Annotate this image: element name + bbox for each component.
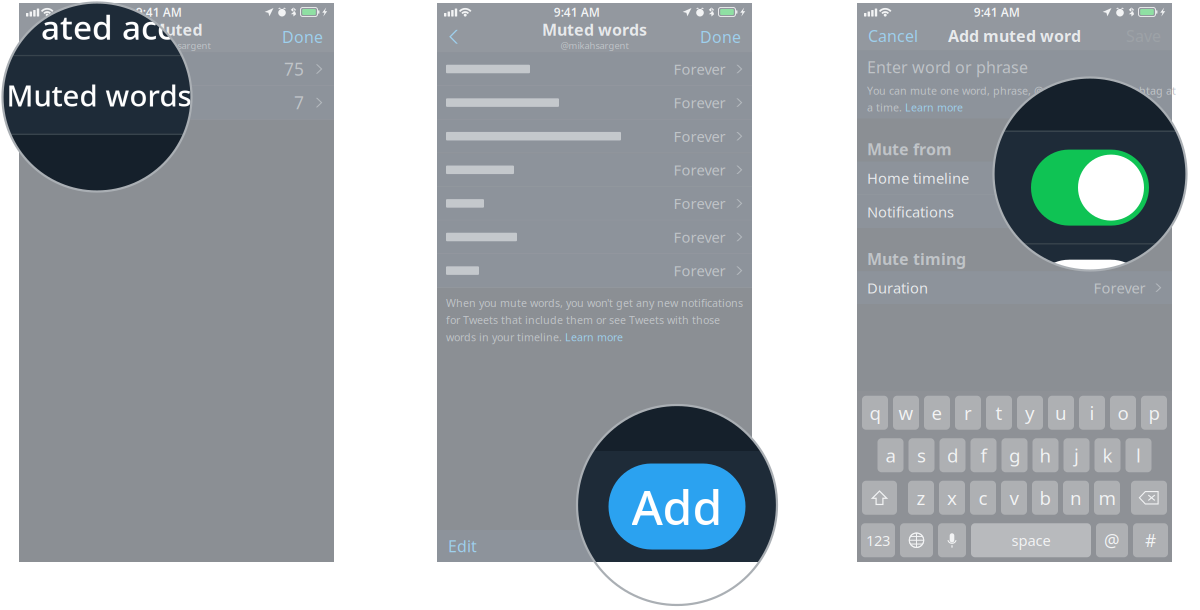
- staticText: Forever: [674, 59, 726, 79]
- staticText: 9:41 AM: [974, 4, 1020, 20]
- staticText: Duration: [867, 278, 928, 297]
- staticText: w: [898, 400, 913, 425]
- button[interactable]: n: [1063, 481, 1089, 515]
- button[interactable]: u: [1048, 396, 1074, 430]
- button[interactable]: 75: [19, 52, 334, 85]
- staticText: v: [1009, 485, 1018, 510]
- staticText: Home timeline: [867, 168, 969, 188]
- button[interactable]: Forever: [437, 254, 752, 287]
- button[interactable]: t: [986, 396, 1012, 430]
- button[interactable]: Forever: [437, 187, 752, 220]
- staticText: b: [1039, 485, 1050, 510]
- button[interactable]: Toggle Home timeline: [1128, 168, 1162, 188]
- staticText: d: [947, 443, 958, 468]
- button[interactable]: Forever: [437, 120, 752, 153]
- button[interactable]: Home timeline on: [1031, 150, 1149, 226]
- button[interactable]: Forever: [437, 52, 752, 85]
- staticText: Learn more: [905, 100, 963, 114]
- button[interactable]: o: [1110, 396, 1136, 430]
- staticText: a: [885, 443, 895, 468]
- staticText: @mikahsargent: [560, 39, 628, 52]
- button[interactable]: j: [1063, 438, 1089, 472]
- staticText: Cancel: [868, 25, 918, 46]
- button[interactable]: Dictate: [938, 523, 966, 557]
- button[interactable]: q: [862, 396, 888, 430]
- staticText: h: [1039, 443, 1051, 468]
- staticText: Forever: [674, 261, 726, 280]
- staticText: j: [1074, 443, 1079, 468]
- button[interactable]: c: [970, 481, 996, 515]
- button[interactable]: 7: [19, 86, 334, 119]
- button[interactable]: Add: [608, 463, 745, 549]
- staticText: You can mute one word, phrase, @username…: [867, 84, 1176, 98]
- staticText: c: [978, 485, 987, 510]
- staticText: Done: [700, 26, 741, 47]
- staticText: n: [1070, 485, 1082, 510]
- staticText: Muted words: [542, 19, 647, 40]
- button[interactable]: i: [1079, 396, 1105, 430]
- button[interactable]: d: [939, 438, 965, 472]
- staticText: Add: [711, 535, 741, 557]
- button[interactable]: w: [893, 396, 919, 430]
- button[interactable]: Forever: [437, 86, 752, 119]
- button[interactable]: y: [1017, 396, 1043, 430]
- staticText: 9:41 AM: [554, 4, 600, 20]
- button[interactable]: Switch keyboard: [900, 523, 933, 557]
- button[interactable]: m: [1094, 481, 1120, 515]
- button[interactable]: Shift: [862, 481, 897, 515]
- staticText: q: [869, 400, 880, 425]
- staticText: u: [1055, 400, 1067, 425]
- button[interactable]: Done: [689, 21, 752, 52]
- staticText: for Tweets that include them or see Twee…: [446, 313, 720, 327]
- staticText: space: [1011, 530, 1050, 550]
- button[interactable]: k: [1094, 438, 1120, 472]
- button[interactable]: Edit: [437, 530, 488, 562]
- staticText: r: [964, 400, 972, 425]
- staticText: Save: [1126, 25, 1161, 46]
- staticText: l: [1136, 443, 1141, 468]
- button[interactable]: Done: [271, 21, 334, 52]
- staticText: Muted: [150, 19, 202, 40]
- staticText: @mikahsargent: [142, 39, 210, 52]
- button[interactable]: space: [971, 523, 1091, 557]
- button[interactable]: #: [1133, 523, 1168, 557]
- button[interactable]: s: [908, 438, 934, 472]
- button[interactable]: g: [1001, 438, 1027, 472]
- staticText: a time.: [867, 100, 905, 114]
- staticText: Mute from: [867, 138, 952, 160]
- button[interactable]: p: [1141, 396, 1167, 430]
- staticText: 123: [866, 530, 890, 550]
- button[interactable]: l: [1125, 438, 1151, 472]
- staticText: 9:41 AM: [136, 4, 182, 20]
- button[interactable]: @: [1096, 523, 1128, 557]
- button[interactable]: 123: [861, 523, 895, 557]
- button[interactable]: v: [1001, 481, 1027, 515]
- staticText: Learn more: [565, 330, 623, 344]
- button[interactable]: Forever: [437, 153, 752, 186]
- button[interactable]: Toggle Notifications: [1128, 202, 1162, 222]
- staticText: i: [1089, 400, 1094, 425]
- button[interactable]: Back: [437, 21, 470, 52]
- staticText: Forever: [674, 126, 726, 146]
- button[interactable]: Duration: [857, 271, 1172, 304]
- button[interactable]: Delete: [1131, 481, 1167, 515]
- staticText: Notifications: [867, 202, 954, 221]
- button[interactable]: Forever: [437, 220, 752, 253]
- button[interactable]: x: [939, 481, 965, 515]
- staticText: f: [980, 443, 986, 468]
- button[interactable]: Add: [700, 530, 752, 562]
- button[interactable]: b: [1032, 481, 1058, 515]
- staticText: ated acc: [41, 5, 173, 49]
- button[interactable]: r: [955, 396, 981, 430]
- staticText: x: [947, 485, 957, 510]
- button[interactable]: z: [908, 481, 934, 515]
- staticText: Edit: [448, 535, 477, 557]
- staticText: p: [1148, 400, 1159, 425]
- button[interactable]: e: [924, 396, 950, 430]
- button[interactable]: h: [1032, 438, 1058, 472]
- staticText: Enter word or phrase: [867, 56, 1028, 78]
- button[interactable]: Cancel: [857, 21, 929, 51]
- button[interactable]: a: [877, 438, 903, 472]
- button[interactable]: f: [970, 438, 996, 472]
